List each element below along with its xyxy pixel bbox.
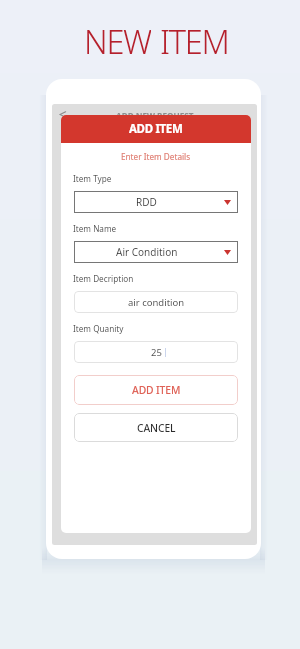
staticText: Item Decription xyxy=(73,273,134,284)
button[interactable]: ADD ITEM xyxy=(74,375,238,405)
button[interactable]: Air Condition xyxy=(74,241,238,263)
button[interactable]: ADD ITEM xyxy=(61,115,251,143)
staticText: NEW xyxy=(84,19,151,55)
button[interactable]: CANCEL xyxy=(74,413,238,442)
button[interactable]: RDD xyxy=(74,191,238,213)
staticText: Item Quanity xyxy=(73,323,124,334)
staticText: Item Type xyxy=(73,173,112,184)
button[interactable]: Back xyxy=(56,108,69,121)
staticText: ADD ITEM xyxy=(129,121,183,137)
staticText: RDD xyxy=(136,195,157,209)
button[interactable]: 25 xyxy=(74,341,238,363)
staticText: Air Condition xyxy=(116,245,178,259)
staticText: Enter Item Details xyxy=(121,151,191,162)
staticText: air condition xyxy=(128,296,185,309)
staticText: ADD NEW REQUEST xyxy=(116,110,194,121)
staticText: ADD ITEM xyxy=(132,383,181,397)
button[interactable]: air condition xyxy=(74,291,238,313)
staticText: Item Name xyxy=(73,223,117,234)
staticText: 25 xyxy=(151,346,162,359)
staticText: ITEM xyxy=(160,19,229,55)
staticText: CANCEL xyxy=(137,421,176,435)
